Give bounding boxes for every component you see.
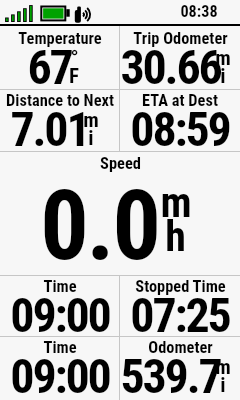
staticText: ETA at Dest xyxy=(142,91,218,110)
button[interactable]: Speed xyxy=(0,152,240,275)
staticText: m xyxy=(215,355,231,380)
staticText: m xyxy=(160,178,192,227)
button[interactable]: Time xyxy=(0,276,119,336)
button[interactable]: Time xyxy=(0,337,119,400)
staticText: 08:38 xyxy=(180,2,218,21)
staticText: 08:59 xyxy=(130,101,230,157)
button[interactable]: Temperature xyxy=(0,26,119,89)
staticText: 0.0 xyxy=(40,170,159,283)
other: Phone connected xyxy=(0,0,240,26)
staticText: Trip Odometer xyxy=(133,29,228,48)
staticText: Temperature xyxy=(18,29,102,48)
staticText: 30.66 xyxy=(120,39,221,95)
staticText: i xyxy=(88,126,94,151)
staticText: Time xyxy=(43,277,77,296)
staticText: m xyxy=(83,108,99,133)
staticText: Time xyxy=(43,338,77,357)
staticText: ° xyxy=(70,46,79,71)
button[interactable]: Trip Odometer xyxy=(120,26,240,89)
staticText: 67 xyxy=(27,39,72,95)
staticText: Distance to Next xyxy=(6,91,114,110)
staticText: m xyxy=(215,46,231,71)
staticText: h xyxy=(165,212,186,261)
staticText: Speed xyxy=(100,154,141,173)
other: Battery xyxy=(0,0,240,26)
button[interactable]: ETA at Dest xyxy=(120,90,240,151)
staticText: Stopped Time xyxy=(135,277,226,296)
staticText: 539.7 xyxy=(120,348,221,400)
staticText: i xyxy=(220,64,226,89)
button[interactable]: Stopped Time xyxy=(120,276,240,336)
staticText: 09:00 xyxy=(10,287,110,343)
button[interactable]: Distance to Next xyxy=(0,90,119,151)
staticText: 09:00 xyxy=(10,348,110,400)
staticText: 7.01 xyxy=(10,101,89,157)
other: Signal strength xyxy=(0,0,240,26)
staticText: Odometer xyxy=(148,338,213,357)
staticText: 07:25 xyxy=(130,287,230,343)
staticText: i xyxy=(220,373,226,398)
button[interactable]: Odometer xyxy=(120,337,240,400)
staticText: F xyxy=(69,64,79,89)
